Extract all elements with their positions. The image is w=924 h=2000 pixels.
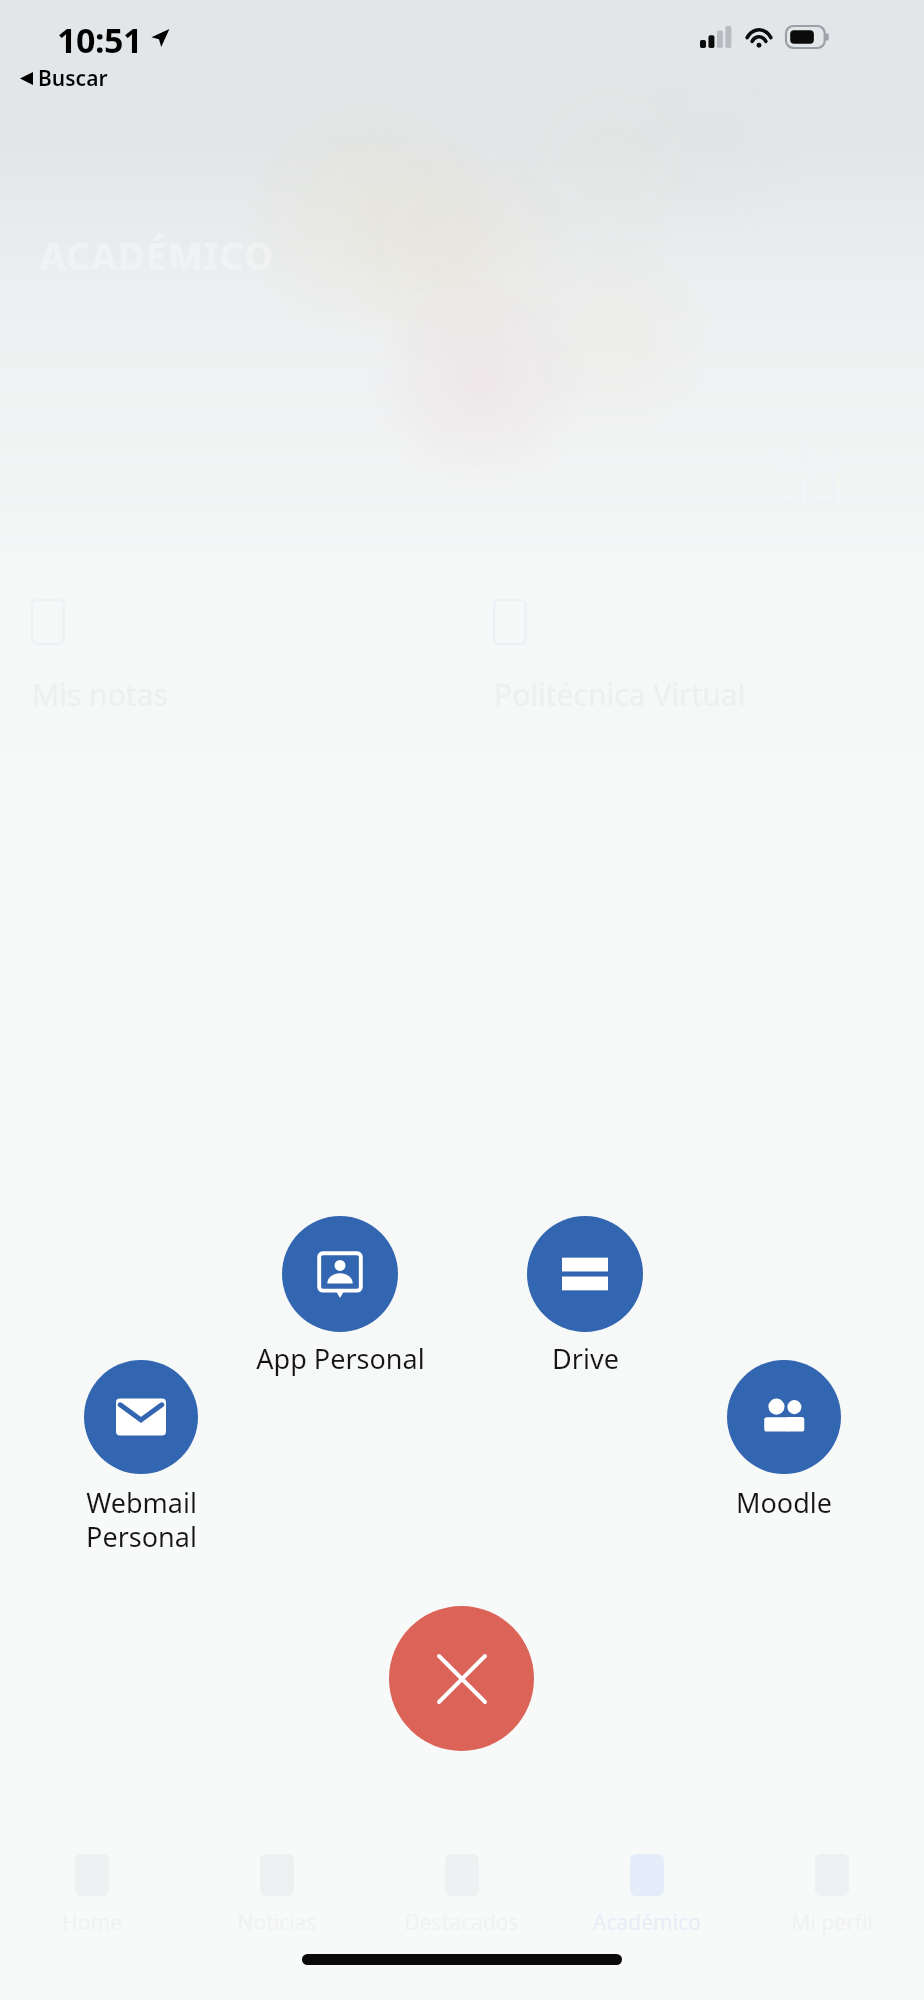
button[interactable]: Webmail Personal — [0, 1360, 291, 1555]
staticText: Politécnica Virtual — [494, 674, 746, 715]
button[interactable]: App Personal — [190, 1216, 490, 1377]
staticText: Buscar — [38, 64, 108, 93]
staticText: Drive — [552, 1340, 619, 1377]
staticText: ACADÉMICO — [40, 230, 275, 280]
button[interactable]: Cerrar — [389, 1606, 534, 1751]
staticText: 10:51 — [57, 17, 142, 63]
button[interactable]: Académico — [554, 1836, 739, 1937]
staticText: App Personal — [256, 1340, 425, 1377]
staticText: Moodle — [736, 1484, 832, 1521]
button[interactable]: Buscar — [18, 62, 110, 95]
staticText: Mis notas — [32, 674, 168, 715]
button[interactable]: Drive — [435, 1216, 735, 1377]
staticText: Académico — [593, 1908, 701, 1937]
staticText: Webmail Personal — [86, 1484, 197, 1555]
button[interactable]: Moodle — [634, 1360, 924, 1521]
